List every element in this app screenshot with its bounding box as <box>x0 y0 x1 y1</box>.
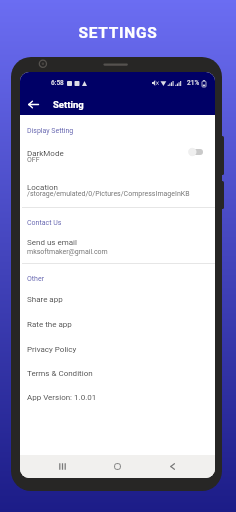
staticText: SETTINGS <box>0 24 236 42</box>
staticText: OFF <box>27 156 40 164</box>
button[interactable]: App Version: 1.0.01 <box>27 385 215 409</box>
staticText: Location <box>27 183 58 192</box>
staticText: Other <box>27 275 45 283</box>
staticText: 21% <box>187 79 200 87</box>
staticText: Send us email <box>27 238 77 247</box>
staticText: 6:58 <box>51 79 64 87</box>
button[interactable]: Rate the app <box>27 312 215 336</box>
button[interactable]: Terms & Condition <box>27 361 215 385</box>
button[interactable]: Privacy Policy <box>27 337 215 361</box>
staticText: Share app <box>27 295 63 304</box>
button[interactable]: Home <box>106 455 128 478</box>
staticText: Privacy Policy <box>27 345 77 354</box>
button[interactable]: DarkMode <box>27 141 204 163</box>
button[interactable]: Back <box>161 455 183 478</box>
staticText: /storage/emulated/0/Pictures/CompressIma… <box>27 190 190 198</box>
staticText: mksoftmaker@gmail.com <box>27 248 108 256</box>
button[interactable] <box>188 146 204 158</box>
button[interactable]: Send us email <box>27 237 215 259</box>
button[interactable]: Recent apps <box>51 455 73 478</box>
staticText: Setting <box>53 99 84 110</box>
staticText: Terms & Condition <box>27 369 93 378</box>
staticText: Contact Us <box>27 219 62 227</box>
staticText: App Version: 1.0.01 <box>27 393 97 402</box>
staticText: DarkMode <box>27 149 64 158</box>
staticText: Rate the app <box>27 320 72 329</box>
button[interactable]: Share app <box>27 287 215 311</box>
staticText: Display Setting <box>27 127 74 135</box>
button[interactable]: Location <box>27 182 215 204</box>
button[interactable]: Back <box>20 94 47 115</box>
